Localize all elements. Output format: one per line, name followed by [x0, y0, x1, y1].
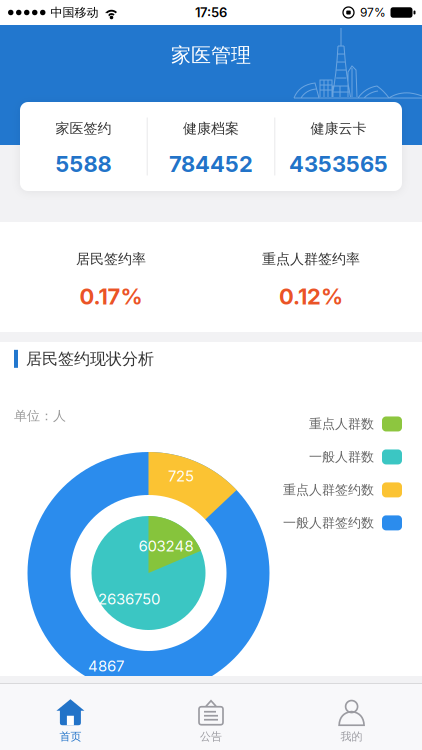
- button[interactable]: 首页: [0, 686, 141, 748]
- staticText: 居民签约现状分析: [26, 349, 154, 369]
- staticText: 17:56: [195, 5, 227, 20]
- button[interactable]: 健康档案: [148, 102, 274, 191]
- button[interactable]: 公告: [141, 686, 281, 748]
- staticText: 603248: [138, 537, 193, 555]
- staticText: 一般人群数: [309, 449, 374, 465]
- staticText: 健康云卡: [311, 120, 367, 137]
- staticText: 5588: [55, 151, 111, 177]
- staticText: 居民签约率: [76, 250, 146, 268]
- staticText: 一般人群签约数: [283, 515, 374, 531]
- staticText: 我的: [341, 730, 363, 743]
- staticText: 公告: [200, 730, 222, 743]
- button[interactable]: 家医签约: [20, 102, 147, 191]
- staticText: 家医签约: [55, 120, 111, 137]
- staticText: 784452: [169, 151, 253, 177]
- staticText: 重点人群数: [309, 416, 374, 432]
- staticText: 4353565: [289, 151, 388, 177]
- button[interactable]: 健康云卡: [275, 102, 402, 191]
- staticText: 重点人群签约率: [262, 250, 360, 268]
- staticText: 0.17%: [79, 284, 142, 310]
- staticText: 725: [168, 467, 194, 485]
- staticText: 首页: [59, 730, 81, 743]
- staticText: 4867: [88, 657, 124, 675]
- staticText: 健康档案: [183, 120, 239, 137]
- staticText: 2636750: [98, 590, 160, 608]
- staticText: 家医管理: [171, 43, 251, 68]
- staticText: 97%: [360, 5, 386, 20]
- staticText: 0.12%: [279, 284, 343, 310]
- staticText: 重点人群签约数: [283, 482, 374, 498]
- button[interactable]: 我的: [281, 686, 422, 748]
- staticText: 单位：人: [14, 408, 66, 424]
- staticText: 中国移动: [50, 5, 98, 20]
